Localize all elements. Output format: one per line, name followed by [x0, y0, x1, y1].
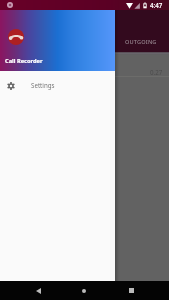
staticText: 4:47 — [150, 1, 163, 9]
button[interactable]: Home — [69, 281, 99, 300]
staticText: Settings — [31, 81, 55, 89]
staticText: Call Recorder — [5, 57, 43, 65]
staticText: 0.27 — [150, 68, 163, 76]
button[interactable]: Back — [23, 281, 53, 300]
button[interactable]: Settings — [0, 71, 115, 98]
button[interactable]: Recents — [116, 281, 146, 300]
staticText: OUTGOING — [125, 38, 157, 46]
